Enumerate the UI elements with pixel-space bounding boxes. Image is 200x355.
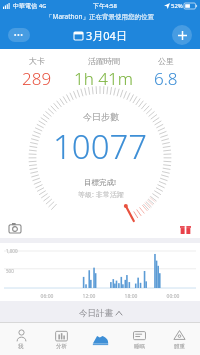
staticText: 4G <box>39 2 47 9</box>
staticText: 中華電信 <box>13 2 37 10</box>
staticText: 1h 41m <box>74 67 133 90</box>
staticText: 289 <box>22 67 52 90</box>
staticText: 今日步數 <box>83 111 119 122</box>
staticText: 體重 <box>174 343 185 350</box>
staticText: 1,000 <box>6 248 18 254</box>
button[interactable]: 體重 <box>161 323 197 355</box>
button[interactable]: Camera <box>7 220 23 236</box>
staticText: 18:00 <box>110 293 152 300</box>
staticText: 3月04日 <box>86 28 127 43</box>
staticText: 00:00 <box>152 293 194 300</box>
staticText: 52% <box>171 2 183 10</box>
button[interactable]: 3月04日 <box>74 28 127 43</box>
button[interactable]: 活躍時間 <box>74 56 133 90</box>
staticText: 今日計畫 <box>79 308 113 319</box>
staticText: 「Marathon」正在背景使用您的位置 <box>46 12 155 21</box>
staticText: 分析 <box>56 343 67 350</box>
button[interactable]: 今日計畫 <box>0 304 200 322</box>
staticText: 目標完成! <box>84 177 117 187</box>
staticText: 12:00 <box>68 293 110 300</box>
button[interactable]: Add <box>172 25 192 45</box>
staticText: 10077 <box>53 124 148 169</box>
staticText: 06:00 <box>26 293 68 300</box>
staticText: 我 <box>18 343 24 350</box>
button[interactable]: 公里 <box>154 56 178 90</box>
button[interactable]: Activity <box>82 323 118 355</box>
button[interactable]: Rewards <box>177 220 193 236</box>
button[interactable]: More <box>8 28 30 42</box>
staticText: 大卡 <box>29 56 45 66</box>
staticText: 公里 <box>158 56 174 66</box>
staticText: 下午4:58 <box>93 2 117 10</box>
staticText: 500 <box>6 268 14 274</box>
button[interactable]: 大卡 <box>22 56 52 90</box>
staticText: 睡眠 <box>134 343 145 350</box>
button[interactable]: 睡眠 <box>121 323 157 355</box>
staticText: 6.8 <box>154 67 178 90</box>
button[interactable]: 我 <box>3 323 39 355</box>
staticText: 活躍時間 <box>88 56 120 66</box>
staticText: 等級: 非常活躍 <box>78 190 124 200</box>
button[interactable]: 分析 <box>43 323 79 355</box>
